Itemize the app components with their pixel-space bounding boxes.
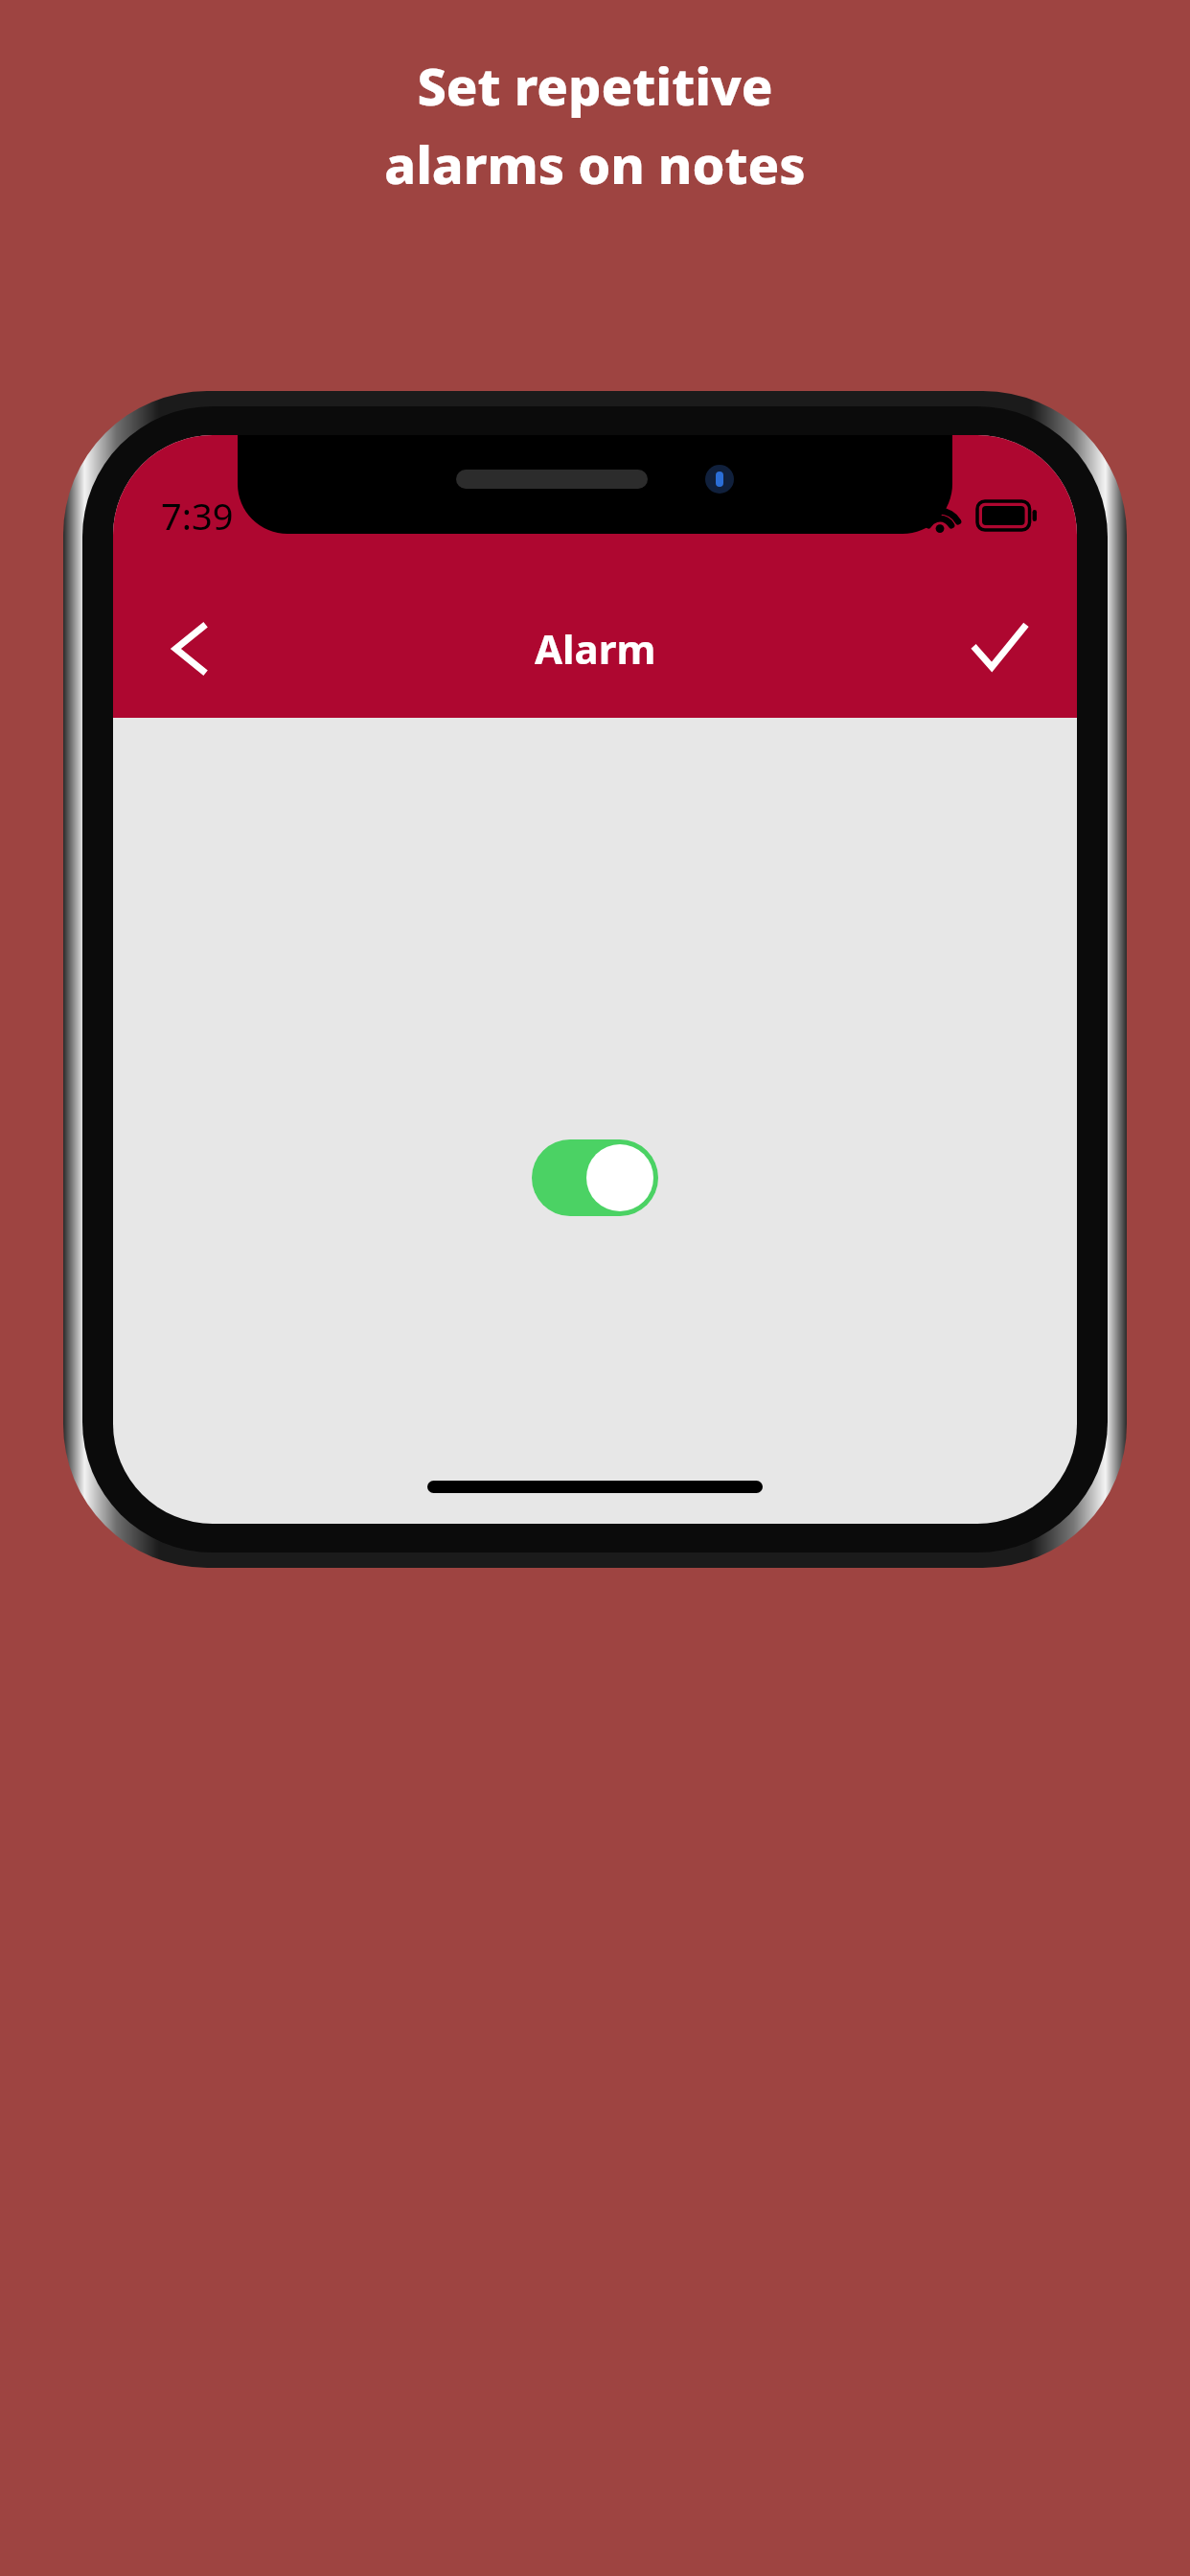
button[interactable]: Alarm enabled	[532, 1139, 658, 1216]
staticText: Set repetitive	[417, 50, 773, 121]
button[interactable]: Back	[138, 596, 243, 701]
staticText: 7:39	[161, 491, 234, 540]
staticText: Alarm	[535, 621, 656, 676]
button[interactable]: Confirm	[947, 596, 1052, 701]
staticText: alarms on notes	[384, 128, 806, 199]
